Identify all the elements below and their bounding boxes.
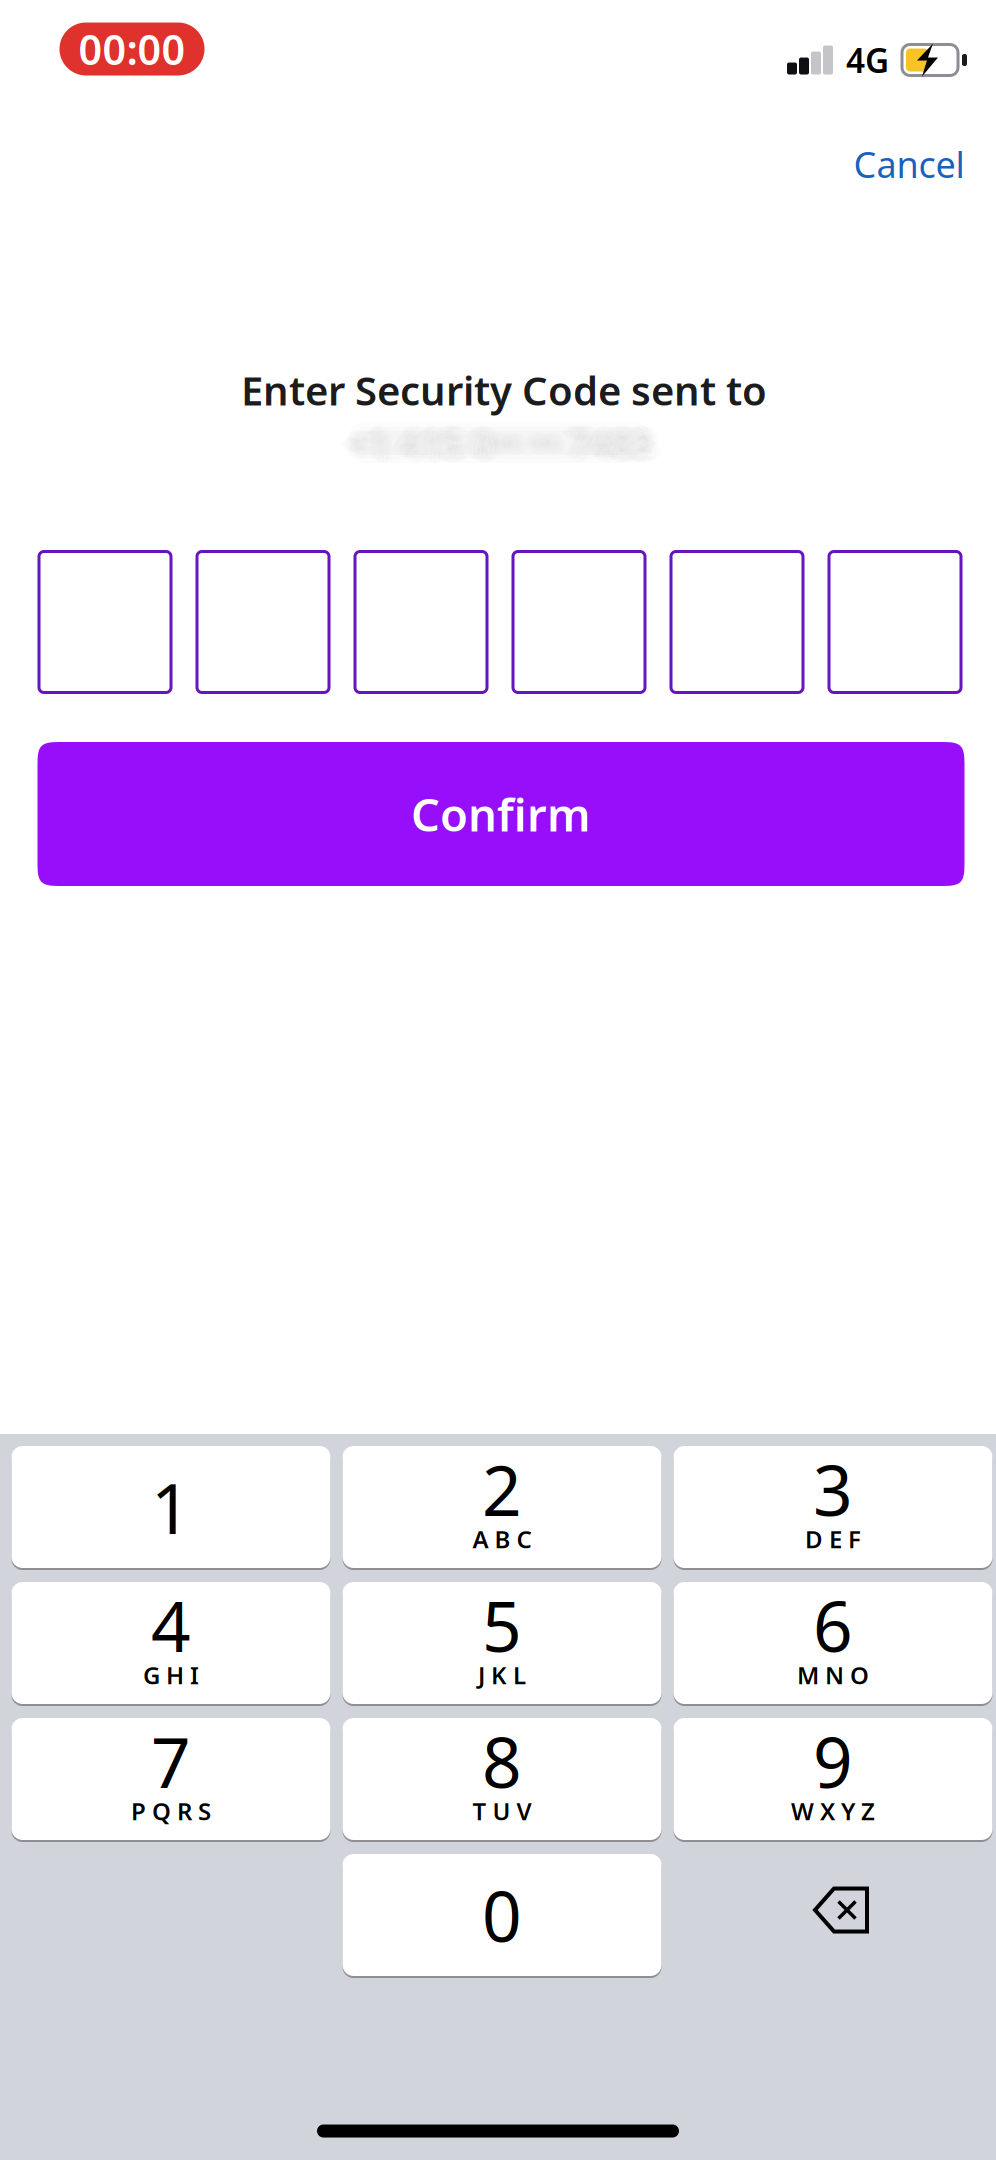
staticText: 4G xyxy=(846,38,889,82)
button[interactable]: Security code digit 3 xyxy=(355,551,487,692)
staticText: 7 xyxy=(151,1715,191,1807)
staticText: 9 xyxy=(813,1715,853,1807)
staticText: M N O xyxy=(797,1659,869,1691)
staticText: 8 xyxy=(482,1715,522,1807)
button[interactable]: 0 xyxy=(342,1853,661,1977)
staticText: Cancel xyxy=(853,140,964,188)
button[interactable]: 6 xyxy=(673,1581,992,1705)
staticText: G H I xyxy=(143,1659,199,1691)
staticText: Confirm xyxy=(411,784,591,844)
staticText: +1 415 0•• •• 7483 xyxy=(345,413,651,463)
staticText: 00:00 xyxy=(78,22,185,76)
staticText: T U V xyxy=(472,1795,531,1827)
staticText: 6 xyxy=(813,1579,853,1671)
staticText: +1 415 0•• •• 7483 xyxy=(339,418,645,468)
staticText: P Q R S xyxy=(131,1795,211,1827)
button[interactable]: 7 xyxy=(11,1717,330,1841)
staticText: +1 415 0•• •• 7483 xyxy=(353,415,659,465)
staticText: 5 xyxy=(482,1579,522,1671)
staticText: +1 415 0•• •• 7483 xyxy=(347,423,653,473)
button[interactable]: 4 xyxy=(11,1581,330,1705)
staticText: A B C xyxy=(472,1523,531,1555)
button[interactable]: Security code digit 6 xyxy=(829,551,961,692)
staticText: W X Y Z xyxy=(791,1795,875,1827)
staticText: 1 xyxy=(151,1461,191,1553)
staticText: J K L xyxy=(478,1659,526,1691)
staticText: 2 xyxy=(482,1443,522,1535)
staticText: 0 xyxy=(482,1869,522,1961)
button[interactable]: Cancel xyxy=(829,122,989,206)
staticText: D E F xyxy=(805,1523,861,1555)
staticText: +1 415 0•• •• 7483 xyxy=(355,421,661,471)
staticText: +1 415 0•• •• 7483 xyxy=(341,415,647,465)
staticText: +1 415 0•• •• 7483 xyxy=(347,418,653,468)
button[interactable]: 1 xyxy=(11,1445,330,1569)
staticText: 4 xyxy=(151,1579,191,1671)
staticText: 3 xyxy=(813,1443,853,1535)
staticText: +1 415 0•• •• 7483 xyxy=(343,421,649,471)
button[interactable]: 3 xyxy=(673,1445,992,1569)
button[interactable]: Security code digit 2 xyxy=(197,551,329,692)
button[interactable]: Delete xyxy=(673,1853,992,1977)
button[interactable]: 9 xyxy=(673,1717,992,1841)
staticText: +1 415 0•• •• 7483 xyxy=(351,423,657,473)
button[interactable]: 8 xyxy=(342,1717,661,1841)
button[interactable]: Security code digit 4 xyxy=(513,551,645,692)
button[interactable]: Confirm xyxy=(37,742,964,886)
button[interactable]: Security code digit 5 xyxy=(671,551,803,692)
button[interactable]: Security code digit 1 xyxy=(39,551,171,692)
staticText: Enter Security Code sent to xyxy=(241,363,767,416)
button[interactable]: 5 xyxy=(342,1581,661,1705)
button[interactable]: 2 xyxy=(342,1445,661,1569)
staticText: +1 415 0•• •• 7483 xyxy=(349,413,655,463)
